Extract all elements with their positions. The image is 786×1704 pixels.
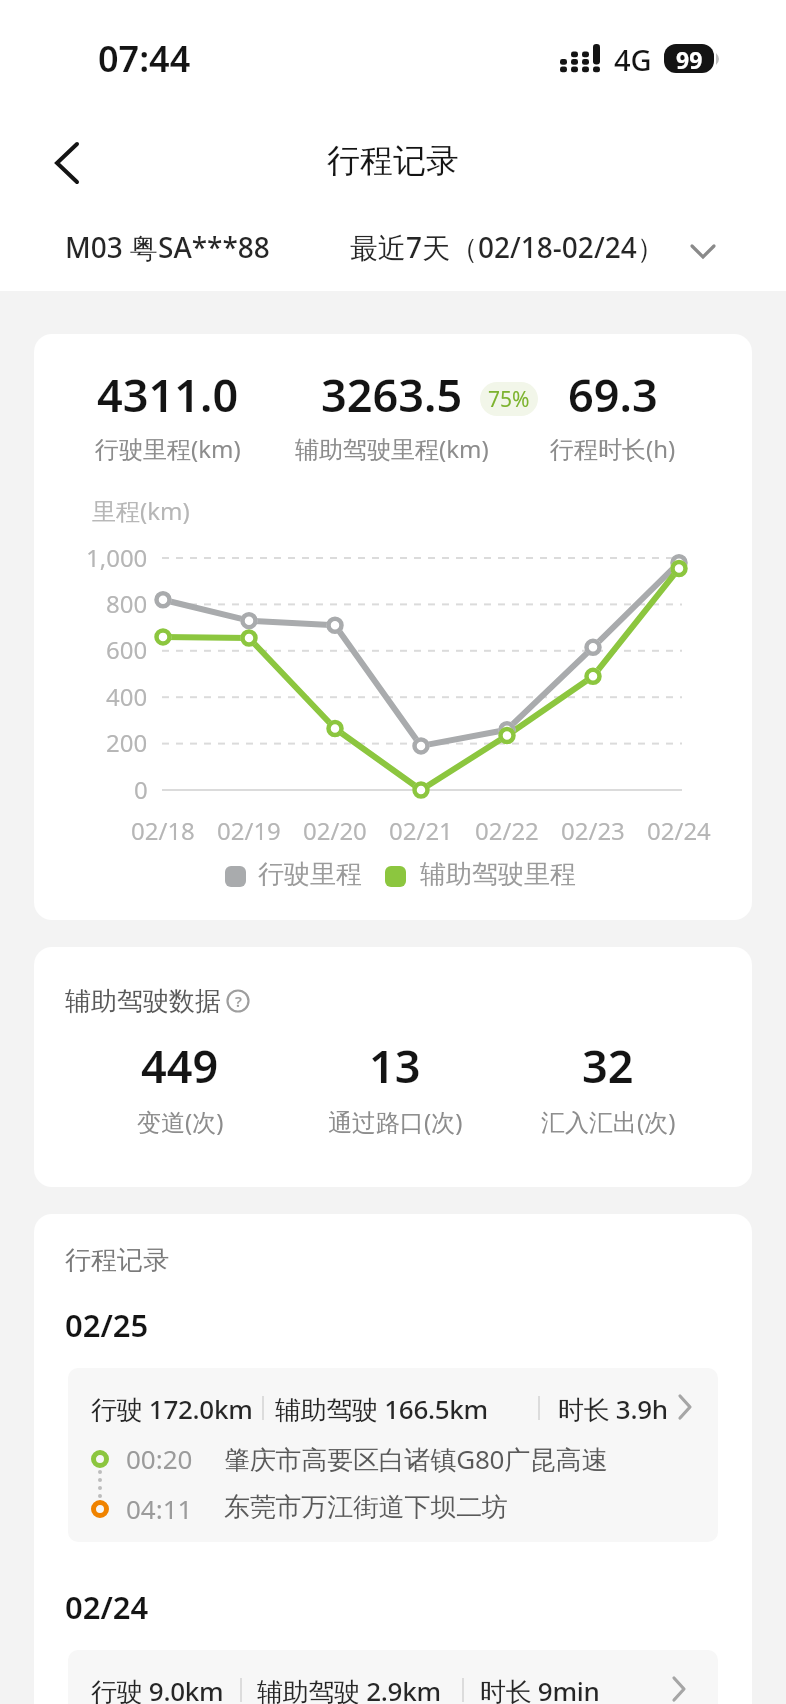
staticText: 02/18 [131,814,195,847]
staticText: 69.3 [568,364,658,425]
staticText: 75% [488,385,530,414]
button[interactable]: ? [224,987,252,1015]
staticText: 时长 3.9h [558,1391,668,1427]
staticText: 32 [582,1035,634,1096]
staticText: 东莞市万江街道下坝二坊 [224,1491,508,1524]
staticText: 行程时长(h) [550,432,676,465]
staticText: 02/21 [389,814,453,847]
staticText: 07:44 [98,34,191,83]
staticText: 600 [106,633,148,666]
staticText: 13 [369,1035,421,1096]
staticText: 800 [106,587,148,620]
staticText: 400 [106,680,148,713]
staticText: 02/19 [217,814,281,847]
staticText: 3263.5 [321,364,463,425]
staticText: 1,000 [86,541,148,574]
staticText: 辅助驾驶 166.5km [275,1391,488,1427]
staticText: 里程(km) [92,494,190,527]
staticText: 肇庆市高要区白诸镇G80广昆高速 [224,1441,608,1477]
staticText: 行驶里程(km) [95,432,241,465]
staticText: 行程记录 [327,140,459,182]
staticText: 449 [141,1035,219,1096]
staticText: 02/25 [65,1304,149,1346]
staticText: 变道(次) [137,1105,224,1138]
staticText: 行驶里程 [258,858,362,891]
button[interactable]: 行驶 9.0km [68,1650,718,1704]
staticText: 辅助驾驶里程 [420,858,576,891]
staticText: 04:11 [126,1491,193,1526]
staticText: 02/22 [475,814,539,847]
button[interactable]: M03 粤SA***88 [60,224,300,276]
staticText: 辅助驾驶里程(km) [295,432,489,465]
staticText: 02/24 [65,1586,149,1628]
staticText: 02/23 [561,814,625,847]
staticText: 4311.0 [97,364,239,425]
staticText: 辅助驾驶 2.9km [257,1673,441,1704]
button[interactable] [40,130,100,194]
staticText: 最近7天（02/18-02/24） [350,228,665,266]
staticText: 00:20 [126,1441,193,1476]
button[interactable]: 最近7天（02/18-02/24） [340,224,730,276]
staticText: M03 粤SA***88 [65,228,270,266]
staticText: 时长 9min [480,1673,600,1704]
staticText: 通过路口(次) [328,1105,463,1138]
staticText: 02/24 [647,814,711,847]
staticText: 99 [676,44,703,73]
staticText: 0 [134,773,148,806]
staticText: 汇入汇出(次) [541,1105,676,1138]
staticText: ? [235,991,242,1011]
staticText: 行程记录 [65,1244,169,1277]
button[interactable]: 行驶 172.0km [68,1368,718,1542]
staticText: 行驶 9.0km [91,1673,224,1704]
staticText: 4G [614,40,652,79]
staticText: 02/20 [303,814,367,847]
staticText: 辅助驾驶数据 [65,985,221,1018]
staticText: 200 [106,726,148,759]
staticText: 行驶 172.0km [91,1391,253,1427]
